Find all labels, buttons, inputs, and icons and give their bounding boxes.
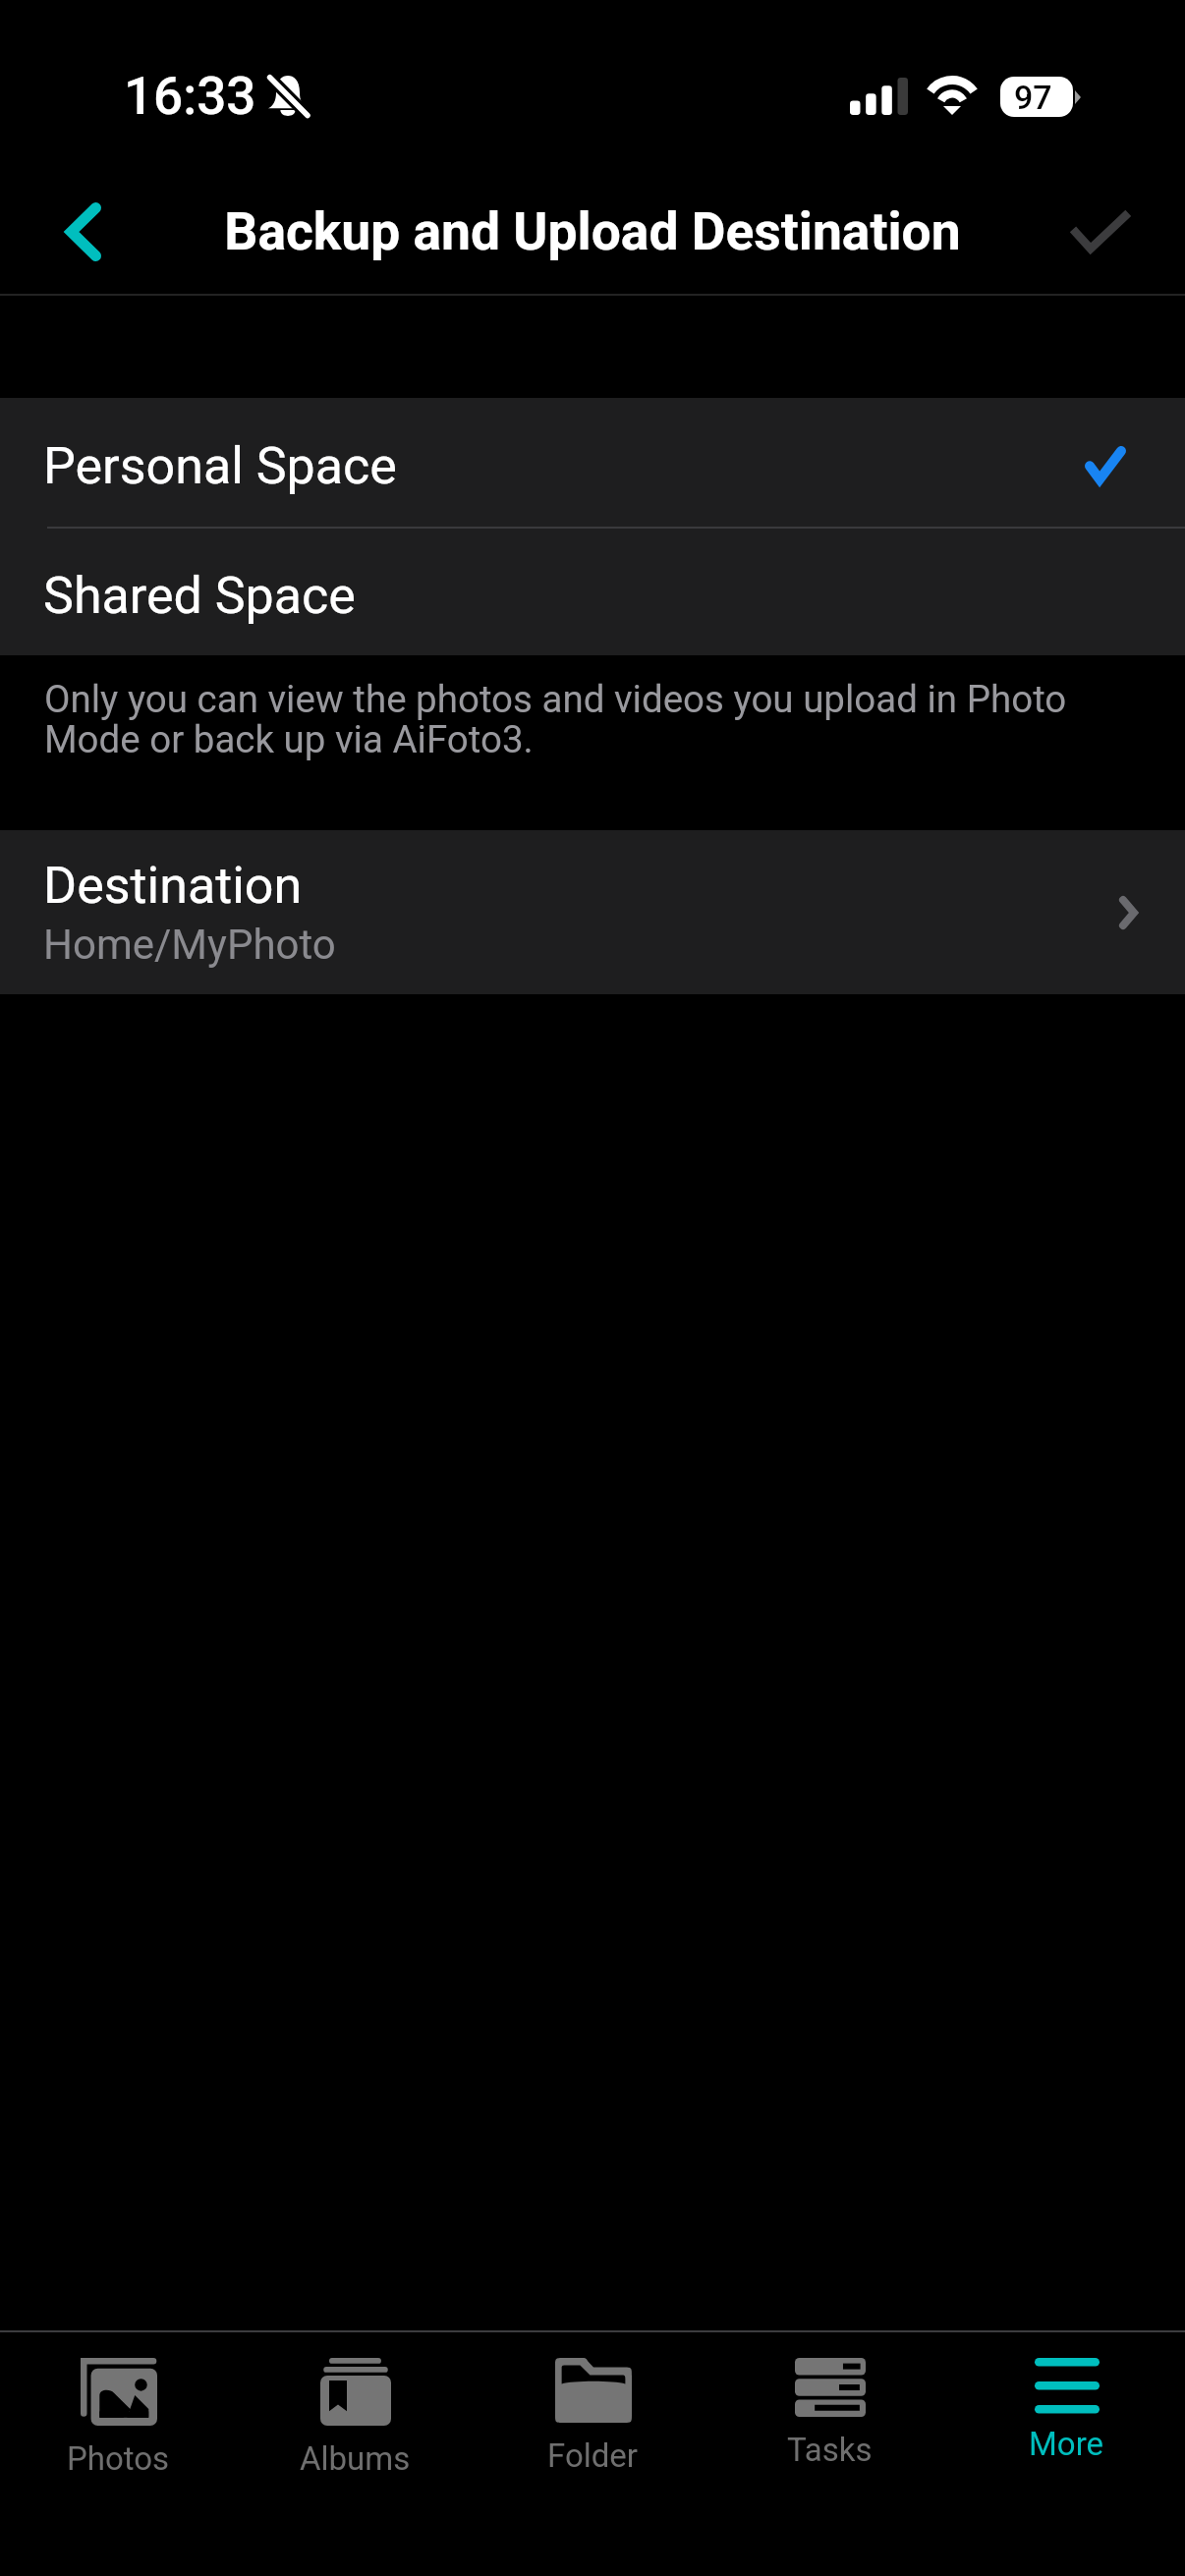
button[interactable]: Personal Space [0, 398, 1185, 527]
staticText: Destination [43, 856, 303, 916]
button[interactable]: Destination [0, 830, 1185, 994]
staticText: Photos [67, 2439, 170, 2478]
button[interactable]: Folder [475, 2332, 711, 2475]
staticText: Shared Space [43, 566, 356, 626]
button[interactable]: More [948, 2332, 1185, 2463]
staticText: Home/MyPhoto [43, 921, 336, 969]
staticText: Albums [300, 2439, 411, 2478]
button[interactable]: Albums [237, 2332, 474, 2478]
staticText: 16:33 [124, 66, 256, 127]
button[interactable]: Photos [0, 2332, 237, 2478]
button[interactable]: Tasks [711, 2332, 948, 2469]
staticText: Folder [547, 2436, 639, 2475]
staticText: More [1029, 2425, 1104, 2463]
staticText: Backup and Upload Destination [224, 200, 961, 262]
staticText: 97 [1014, 78, 1052, 117]
button[interactable]: Confirm [1051, 178, 1150, 286]
staticText: Personal Space [43, 436, 397, 496]
staticText: Only you can view the photos and videos … [44, 677, 1128, 762]
button[interactable]: Shared Space [0, 529, 1185, 655]
staticText: Tasks [787, 2431, 873, 2469]
button[interactable]: Back [39, 178, 128, 286]
